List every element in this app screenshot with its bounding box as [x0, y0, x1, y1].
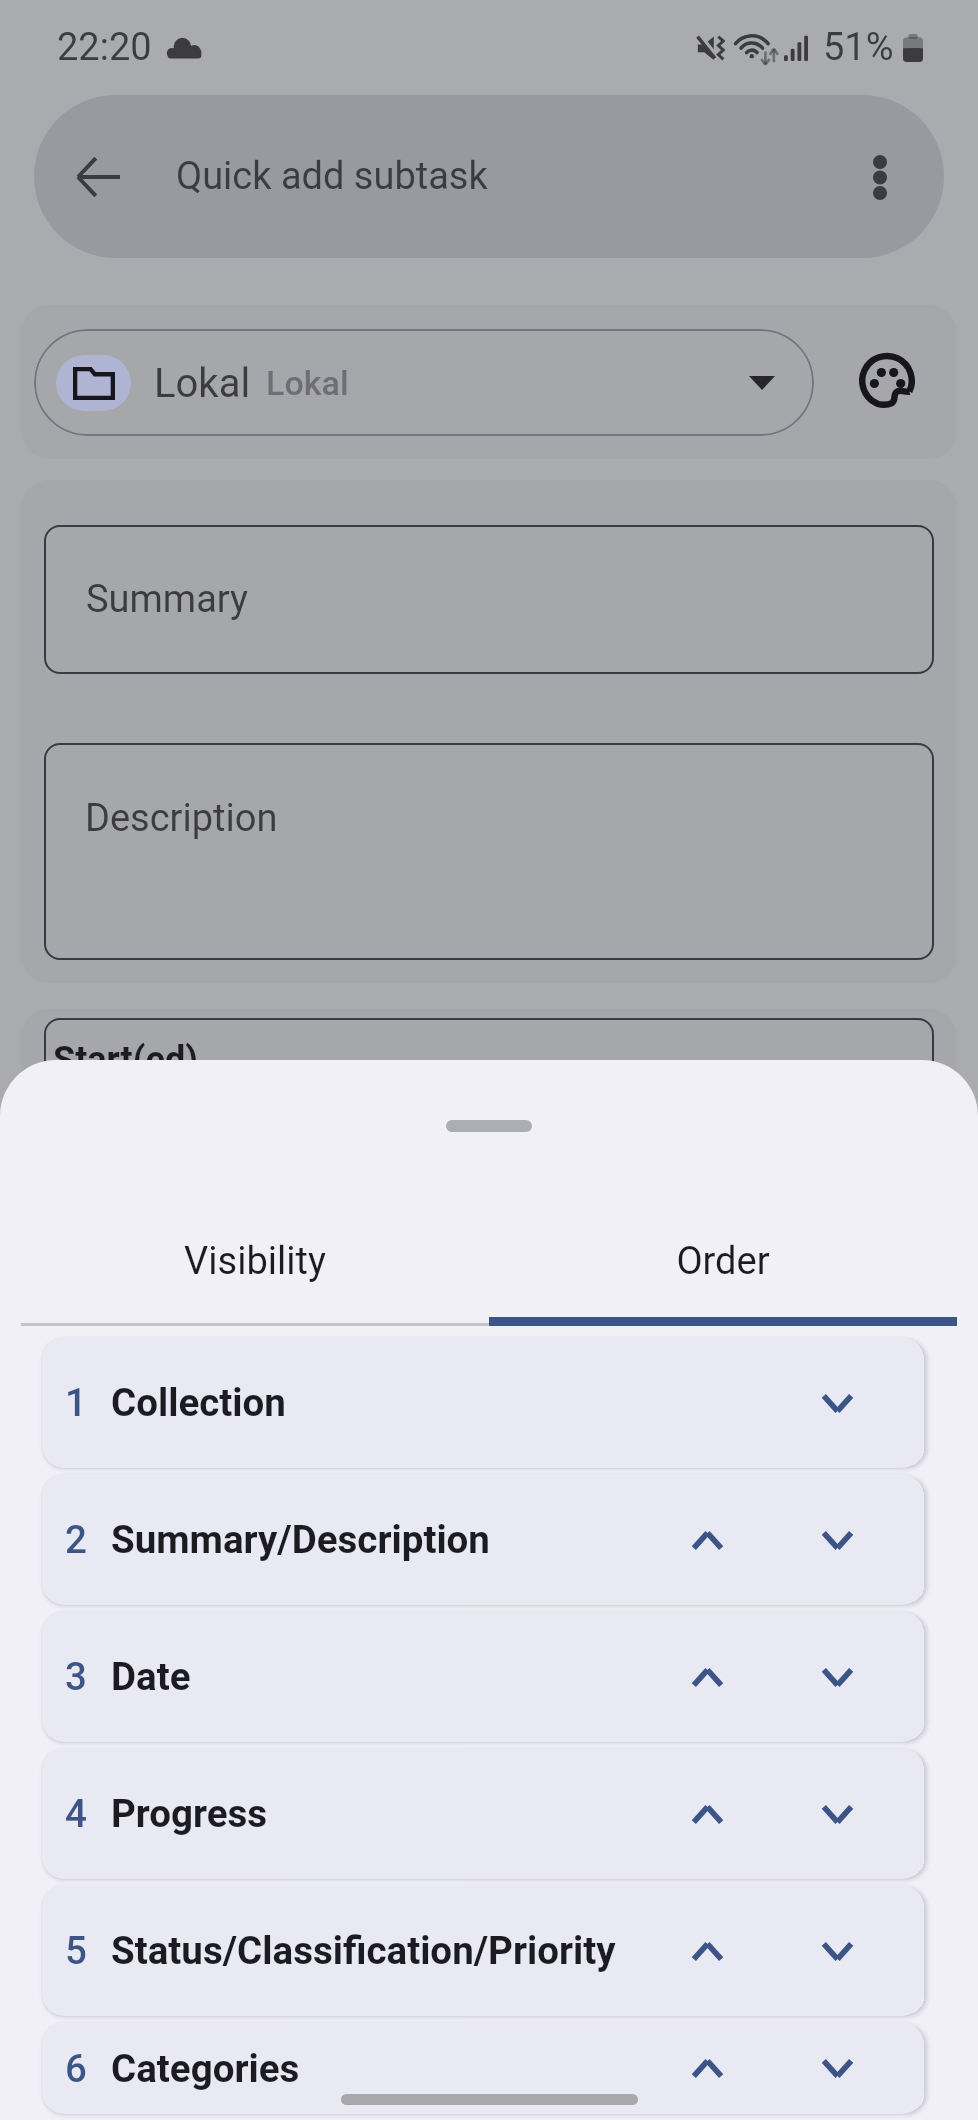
staticText: Quick add subtask — [176, 154, 488, 199]
staticText: Start(ed) — [53, 1039, 198, 1081]
button[interactable]: 1 — [42, 1337, 924, 1468]
button[interactable]: Visibility — [21, 1233, 489, 1289]
button[interactable]: 5 — [42, 1885, 924, 2016]
button[interactable]: 4 — [42, 1748, 924, 1879]
staticText: 3 — [65, 1654, 87, 1699]
button[interactable]: 2 — [42, 1474, 924, 1605]
staticText: Visibility — [184, 1239, 326, 1284]
button[interactable]: Move down — [797, 1637, 877, 1717]
button[interactable]: Back — [52, 131, 144, 223]
button[interactable]: Move down — [797, 1774, 877, 1854]
staticText: Summary — [86, 577, 249, 622]
staticText: 6 — [65, 2046, 87, 2091]
button[interactable]: More options — [834, 131, 926, 223]
staticText: Collection — [111, 1380, 286, 1425]
button[interactable]: Move down — [797, 1363, 877, 1443]
staticText: Categories — [111, 2046, 300, 2091]
button[interactable]: Description — [44, 743, 934, 960]
button[interactable]: Move up — [667, 1911, 747, 1991]
staticText: 1 — [65, 1380, 87, 1425]
staticText: Progress — [111, 1791, 268, 1836]
staticText: Lokal — [266, 363, 349, 403]
button[interactable]: Order — [489, 1233, 957, 1289]
button[interactable]: Summary — [44, 525, 934, 674]
staticText: Lokal — [154, 360, 251, 407]
staticText: Status/Classification/Priority — [111, 1928, 616, 1973]
button[interactable]: Move up — [667, 1500, 747, 1580]
button[interactable]: 3 — [42, 1611, 924, 1742]
staticText: 22:20 — [57, 25, 152, 70]
button[interactable]: Move down — [797, 2028, 877, 2108]
button[interactable]: Move up — [667, 2028, 747, 2108]
button[interactable]: Move up — [667, 1637, 747, 1717]
staticText: Summary/Description — [111, 1517, 490, 1562]
staticText: Description — [85, 796, 278, 841]
staticText: 4 — [65, 1791, 87, 1836]
button[interactable]: Lokal — [34, 329, 814, 436]
staticText: Order — [676, 1239, 770, 1284]
staticText: 51% — [823, 25, 894, 70]
staticText: 2 — [65, 1517, 87, 1562]
button[interactable]: Move up — [667, 1774, 747, 1854]
button[interactable]: 6 — [42, 2022, 924, 2114]
button[interactable]: Colour — [839, 335, 935, 431]
button[interactable]: Move down — [797, 1500, 877, 1580]
staticText: 5 — [65, 1928, 87, 1973]
button[interactable]: Move down — [797, 1911, 877, 1991]
staticText: Date — [111, 1654, 191, 1699]
